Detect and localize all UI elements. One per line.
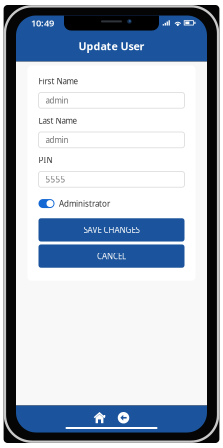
staticText: SAVE CHANGES [83, 225, 139, 235]
staticText: admin [45, 135, 68, 145]
staticText: First Name [38, 76, 78, 86]
staticText: 5555 [45, 174, 65, 185]
staticText: Administrator [59, 198, 110, 209]
staticText: Last Name [38, 115, 77, 126]
staticText: admin [45, 95, 68, 106]
button[interactable]: Home [94, 412, 105, 423]
button[interactable]: Back [118, 412, 129, 423]
staticText: PIN [38, 155, 52, 165]
button[interactable]: CANCEL [38, 244, 184, 268]
staticText: 10:49 [31, 17, 54, 29]
button[interactable]: SAVE CHANGES [38, 218, 184, 241]
staticText: CANCEL [97, 251, 126, 261]
staticText: Update User [78, 39, 144, 53]
